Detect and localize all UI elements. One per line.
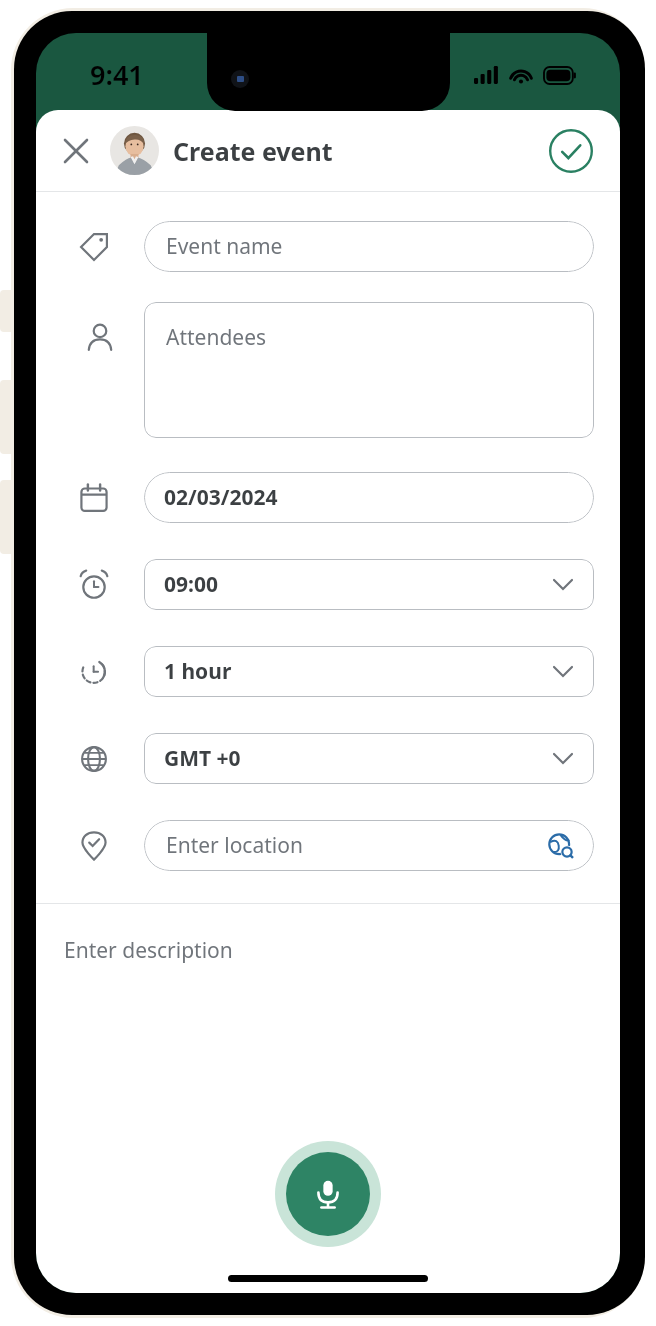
button[interactable]: Confirm <box>548 128 594 174</box>
button[interactable]: Enter description <box>36 904 620 1293</box>
button[interactable]: Record with microphone <box>275 1141 381 1247</box>
staticText: 1 hour <box>164 657 232 686</box>
button[interactable]: Close <box>52 127 100 175</box>
staticText: Create event <box>173 134 333 168</box>
button[interactable]: 1 hour <box>144 646 594 697</box>
button[interactable]: 02/03/2024 <box>144 472 594 523</box>
staticText: 02/03/2024 <box>164 483 278 512</box>
button[interactable]: Search location <box>544 829 578 863</box>
staticText: Attendees <box>166 323 267 352</box>
staticText: Event name <box>166 232 283 261</box>
button[interactable]: Enter location <box>144 820 594 871</box>
staticText: 9:41 <box>90 56 144 93</box>
staticText: Enter location <box>166 831 303 860</box>
button[interactable]: Event name <box>144 221 594 272</box>
button[interactable]: 09:00 <box>144 559 594 610</box>
button[interactable]: GMT +0 <box>144 733 594 784</box>
staticText: GMT +0 <box>164 744 241 773</box>
button[interactable]: Attendees <box>144 302 594 438</box>
staticText: Enter description <box>64 936 233 965</box>
staticText: 09:00 <box>164 570 218 599</box>
